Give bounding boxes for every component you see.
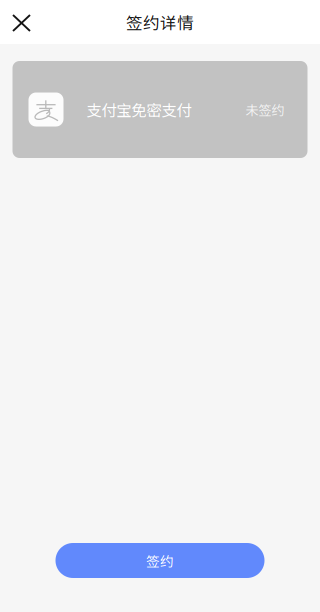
button[interactable]: Close bbox=[0, 0, 45, 44]
staticText: 未签约 bbox=[245, 100, 284, 119]
staticText: 支付宝免密支付 bbox=[86, 98, 191, 121]
staticText: 签约详情 bbox=[126, 10, 194, 34]
button[interactable]: 签约 bbox=[55, 543, 264, 578]
staticText: 签约 bbox=[146, 551, 174, 570]
button[interactable]: 支付宝免密支付 bbox=[12, 61, 307, 158]
